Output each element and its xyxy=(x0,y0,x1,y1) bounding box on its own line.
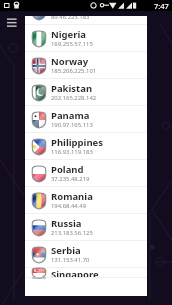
staticText: Norway xyxy=(51,55,89,68)
button[interactable]: Singapore xyxy=(25,268,147,278)
staticText: Russia xyxy=(51,217,82,230)
button[interactable]: Pakistan xyxy=(25,79,147,106)
staticText: 169.255.57.115 xyxy=(51,40,93,48)
button[interactable]: Norway xyxy=(25,52,147,79)
button[interactable]: Open navigation drawer xyxy=(4,14,20,28)
staticText: 185.206.225.101 xyxy=(51,67,97,75)
button[interactable]: Panama xyxy=(25,106,147,133)
button[interactable]: Nigeria xyxy=(25,25,147,52)
button[interactable]: Serbia xyxy=(25,241,147,268)
button[interactable]: Netherlands xyxy=(25,16,147,25)
staticText: 89.46.223.183 xyxy=(51,16,90,21)
staticText: 7:47 xyxy=(154,1,169,11)
staticText: 116.93.119.183 xyxy=(51,148,93,156)
staticText: Pakistan xyxy=(51,82,93,95)
staticText: Philippines xyxy=(51,136,104,149)
staticText: 202.165.228.142 xyxy=(51,94,97,102)
staticText: 131.153.41.70 xyxy=(51,256,90,264)
button[interactable]: Romania xyxy=(25,187,147,214)
staticText: Serbia xyxy=(51,244,81,257)
staticText: Panama xyxy=(51,109,90,122)
staticText: 37.235.48.219 xyxy=(51,175,90,183)
button[interactable]: Russia xyxy=(25,214,147,241)
staticText: 190.97.165.113 xyxy=(51,121,93,129)
staticText: Nigeria xyxy=(51,28,87,41)
staticText: Romania xyxy=(51,190,93,203)
staticText: Singapore xyxy=(51,268,99,278)
staticText: 194.68.44.49 xyxy=(51,202,87,210)
button[interactable]: Philippines xyxy=(25,133,147,160)
button[interactable]: Poland xyxy=(25,160,147,187)
staticText: 213.183.56.125 xyxy=(51,229,93,237)
staticText: Poland xyxy=(51,163,84,176)
